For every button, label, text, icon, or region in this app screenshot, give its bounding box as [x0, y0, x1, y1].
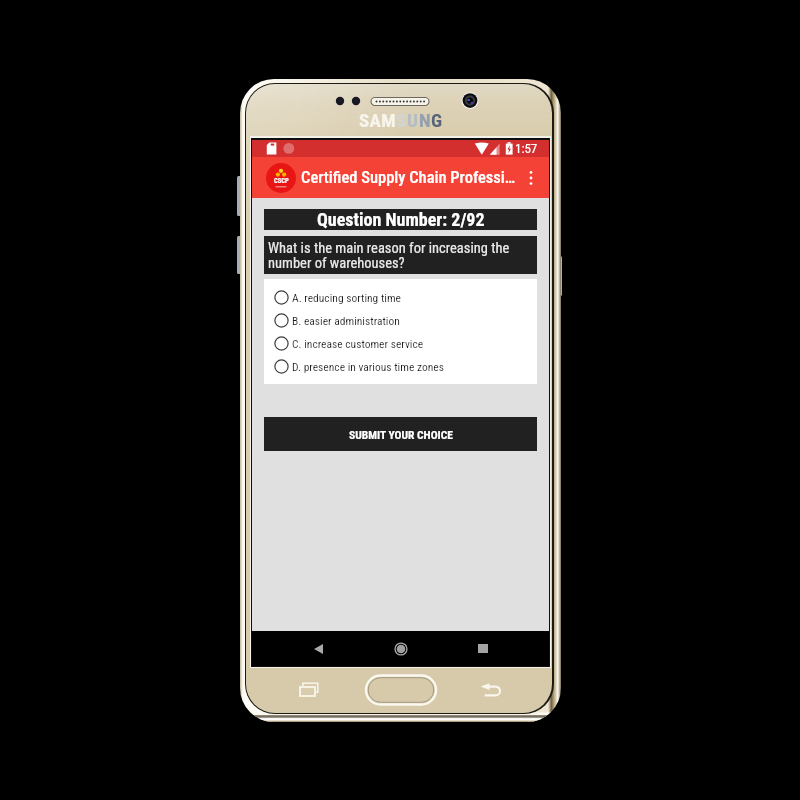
staticText: A. reducing sorting time: [292, 291, 402, 304]
staticText: B. easier administration: [292, 314, 400, 327]
staticText: S: [396, 109, 407, 131]
button[interactable]: Recent apps: [462, 631, 503, 666]
staticText: What is the main reason for increasing t…: [268, 240, 535, 271]
button[interactable]: SUBMIT YOUR CHOICE: [264, 417, 537, 451]
button[interactable]: A. reducing sorting time: [264, 286, 537, 309]
staticText: D. presence in various time zones: [292, 360, 444, 373]
staticText: G: [431, 109, 443, 131]
button[interactable]: Home: [380, 631, 421, 666]
button[interactable]: D. presence in various time zones: [264, 355, 537, 378]
staticText: N: [419, 109, 431, 131]
staticText: C. increase customer service: [292, 337, 424, 350]
staticText: CSCP: [274, 177, 289, 185]
staticText: U: [407, 109, 419, 131]
staticText: 1:57: [515, 141, 538, 156]
button[interactable]: C. increase customer service: [264, 332, 537, 355]
staticText: SUBMIT YOUR CHOICE: [349, 428, 453, 441]
button[interactable]: More options: [516, 163, 546, 193]
button[interactable]: Back: [298, 631, 339, 666]
staticText: SAM: [359, 109, 396, 131]
button[interactable]: CSCP app icon: [266, 163, 296, 193]
button[interactable]: B. easier administration: [264, 309, 537, 332]
staticText: Certified Supply Chain Professi…: [301, 168, 516, 187]
staticText: Question Number: 2/92: [317, 209, 485, 230]
